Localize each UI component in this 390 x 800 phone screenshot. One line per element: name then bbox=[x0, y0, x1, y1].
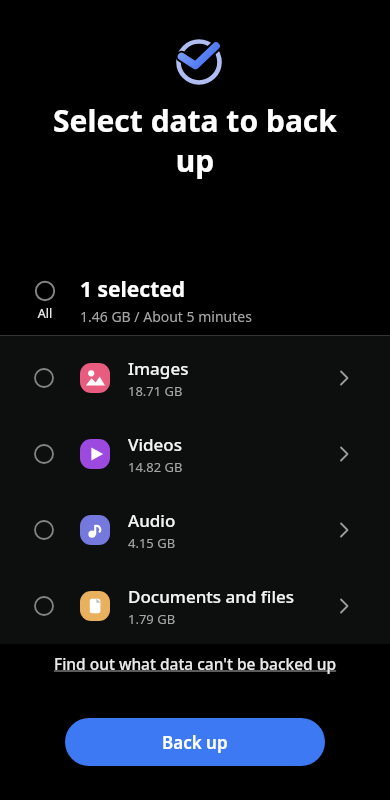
staticText: Select data to back up bbox=[40, 100, 350, 181]
staticText: Videos bbox=[128, 433, 182, 456]
staticText: 1 selected bbox=[80, 275, 186, 304]
button[interactable]: Audio bbox=[0, 492, 390, 568]
staticText: 4.15 GB bbox=[128, 534, 176, 552]
staticText: 1.79 GB bbox=[128, 610, 176, 628]
staticText: Documents and files bbox=[128, 585, 295, 608]
button[interactable]: Images bbox=[0, 340, 390, 416]
staticText: Audio bbox=[128, 509, 176, 532]
staticText: 14.82 GB bbox=[128, 458, 183, 476]
button[interactable]: Find out what data can't be backed up bbox=[54, 653, 337, 674]
button[interactable]: Back up bbox=[65, 718, 325, 766]
button[interactable]: Videos bbox=[0, 416, 390, 492]
staticText: Back up bbox=[162, 731, 228, 754]
button[interactable]: All bbox=[0, 270, 390, 330]
button[interactable]: Documents and files bbox=[0, 568, 390, 644]
staticText: 18.71 GB bbox=[128, 382, 183, 400]
staticText: 1.46 GB / About 5 minutes bbox=[80, 307, 252, 326]
staticText: Images bbox=[128, 357, 189, 380]
staticText: All bbox=[30, 305, 60, 322]
